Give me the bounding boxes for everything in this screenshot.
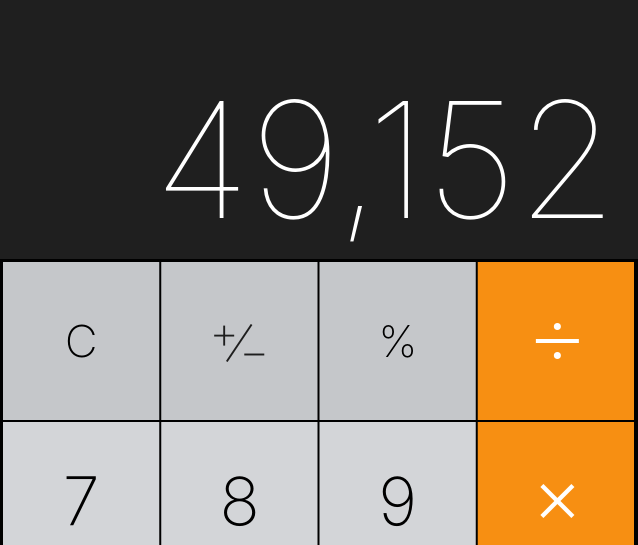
button[interactable]: Percent bbox=[319, 262, 476, 420]
button[interactable]: 9 bbox=[319, 422, 476, 545]
staticText: 7 bbox=[63, 461, 100, 541]
button[interactable]: Plus minus bbox=[161, 262, 317, 420]
staticText: % bbox=[378, 314, 417, 368]
button[interactable]: 7 bbox=[3, 422, 159, 545]
staticText: 49,152 bbox=[154, 62, 617, 257]
button[interactable]: Multiply bbox=[478, 422, 634, 545]
button[interactable]: Divide bbox=[478, 262, 634, 420]
button[interactable]: Clear bbox=[3, 262, 159, 420]
staticText: 9 bbox=[378, 461, 417, 541]
staticText: 8 bbox=[219, 461, 259, 541]
button[interactable]: 8 bbox=[161, 422, 317, 545]
staticText: C bbox=[65, 314, 98, 368]
